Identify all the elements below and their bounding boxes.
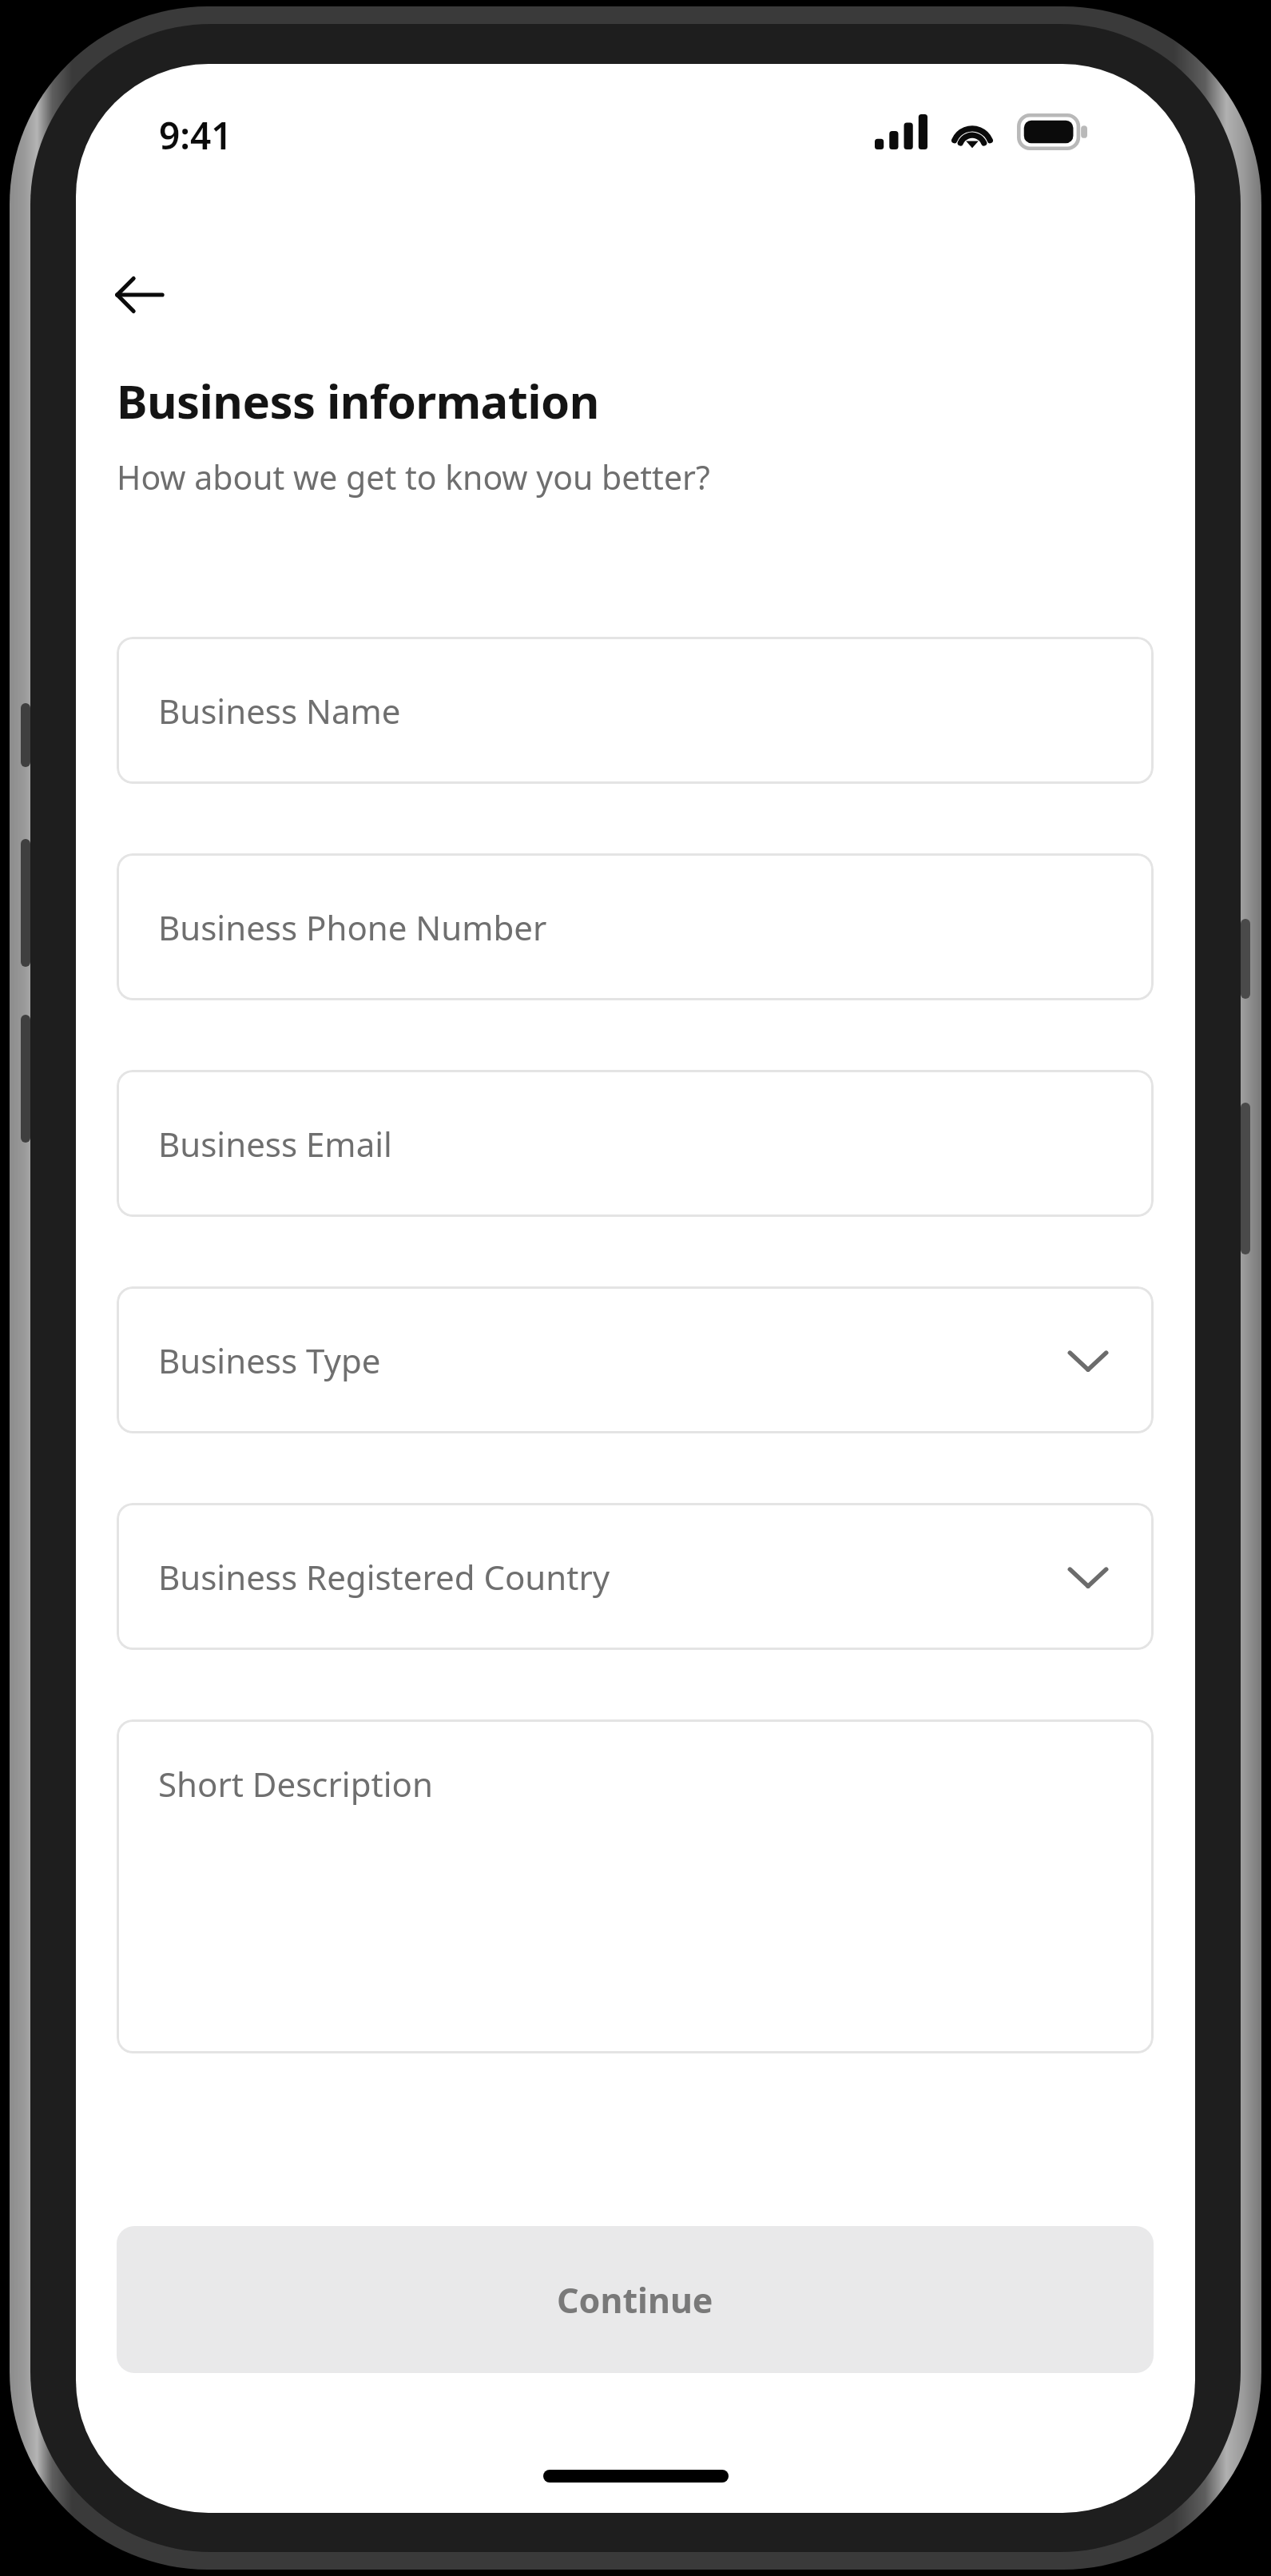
staticText: Business Type [158,1338,381,1383]
button[interactable]: Business Name [117,637,1154,784]
button[interactable]: Back [93,249,185,340]
staticText: Business Name [158,688,401,733]
staticText: Short Description [158,1761,433,1807]
button[interactable]: Continue [117,2226,1154,2373]
button[interactable]: Business Type [117,1286,1154,1433]
staticText: How about we get to know you better? [117,455,710,499]
button[interactable]: Business Registered Country [117,1503,1154,1650]
button[interactable]: Business Email [117,1070,1154,1217]
staticText: Business Phone Number [158,904,547,950]
button[interactable]: Expand Business Registered Country [1056,1544,1120,1608]
button[interactable]: Short Description [117,1719,1154,2053]
staticText: Business Registered Country [158,1554,610,1600]
staticText: Business information [117,369,599,432]
staticText: 9:41 [159,110,232,161]
button[interactable]: Expand Business Type [1056,1328,1120,1392]
button[interactable]: Business Phone Number [117,853,1154,1000]
staticText: Continue [557,2276,713,2324]
staticText: Business Email [158,1121,392,1167]
